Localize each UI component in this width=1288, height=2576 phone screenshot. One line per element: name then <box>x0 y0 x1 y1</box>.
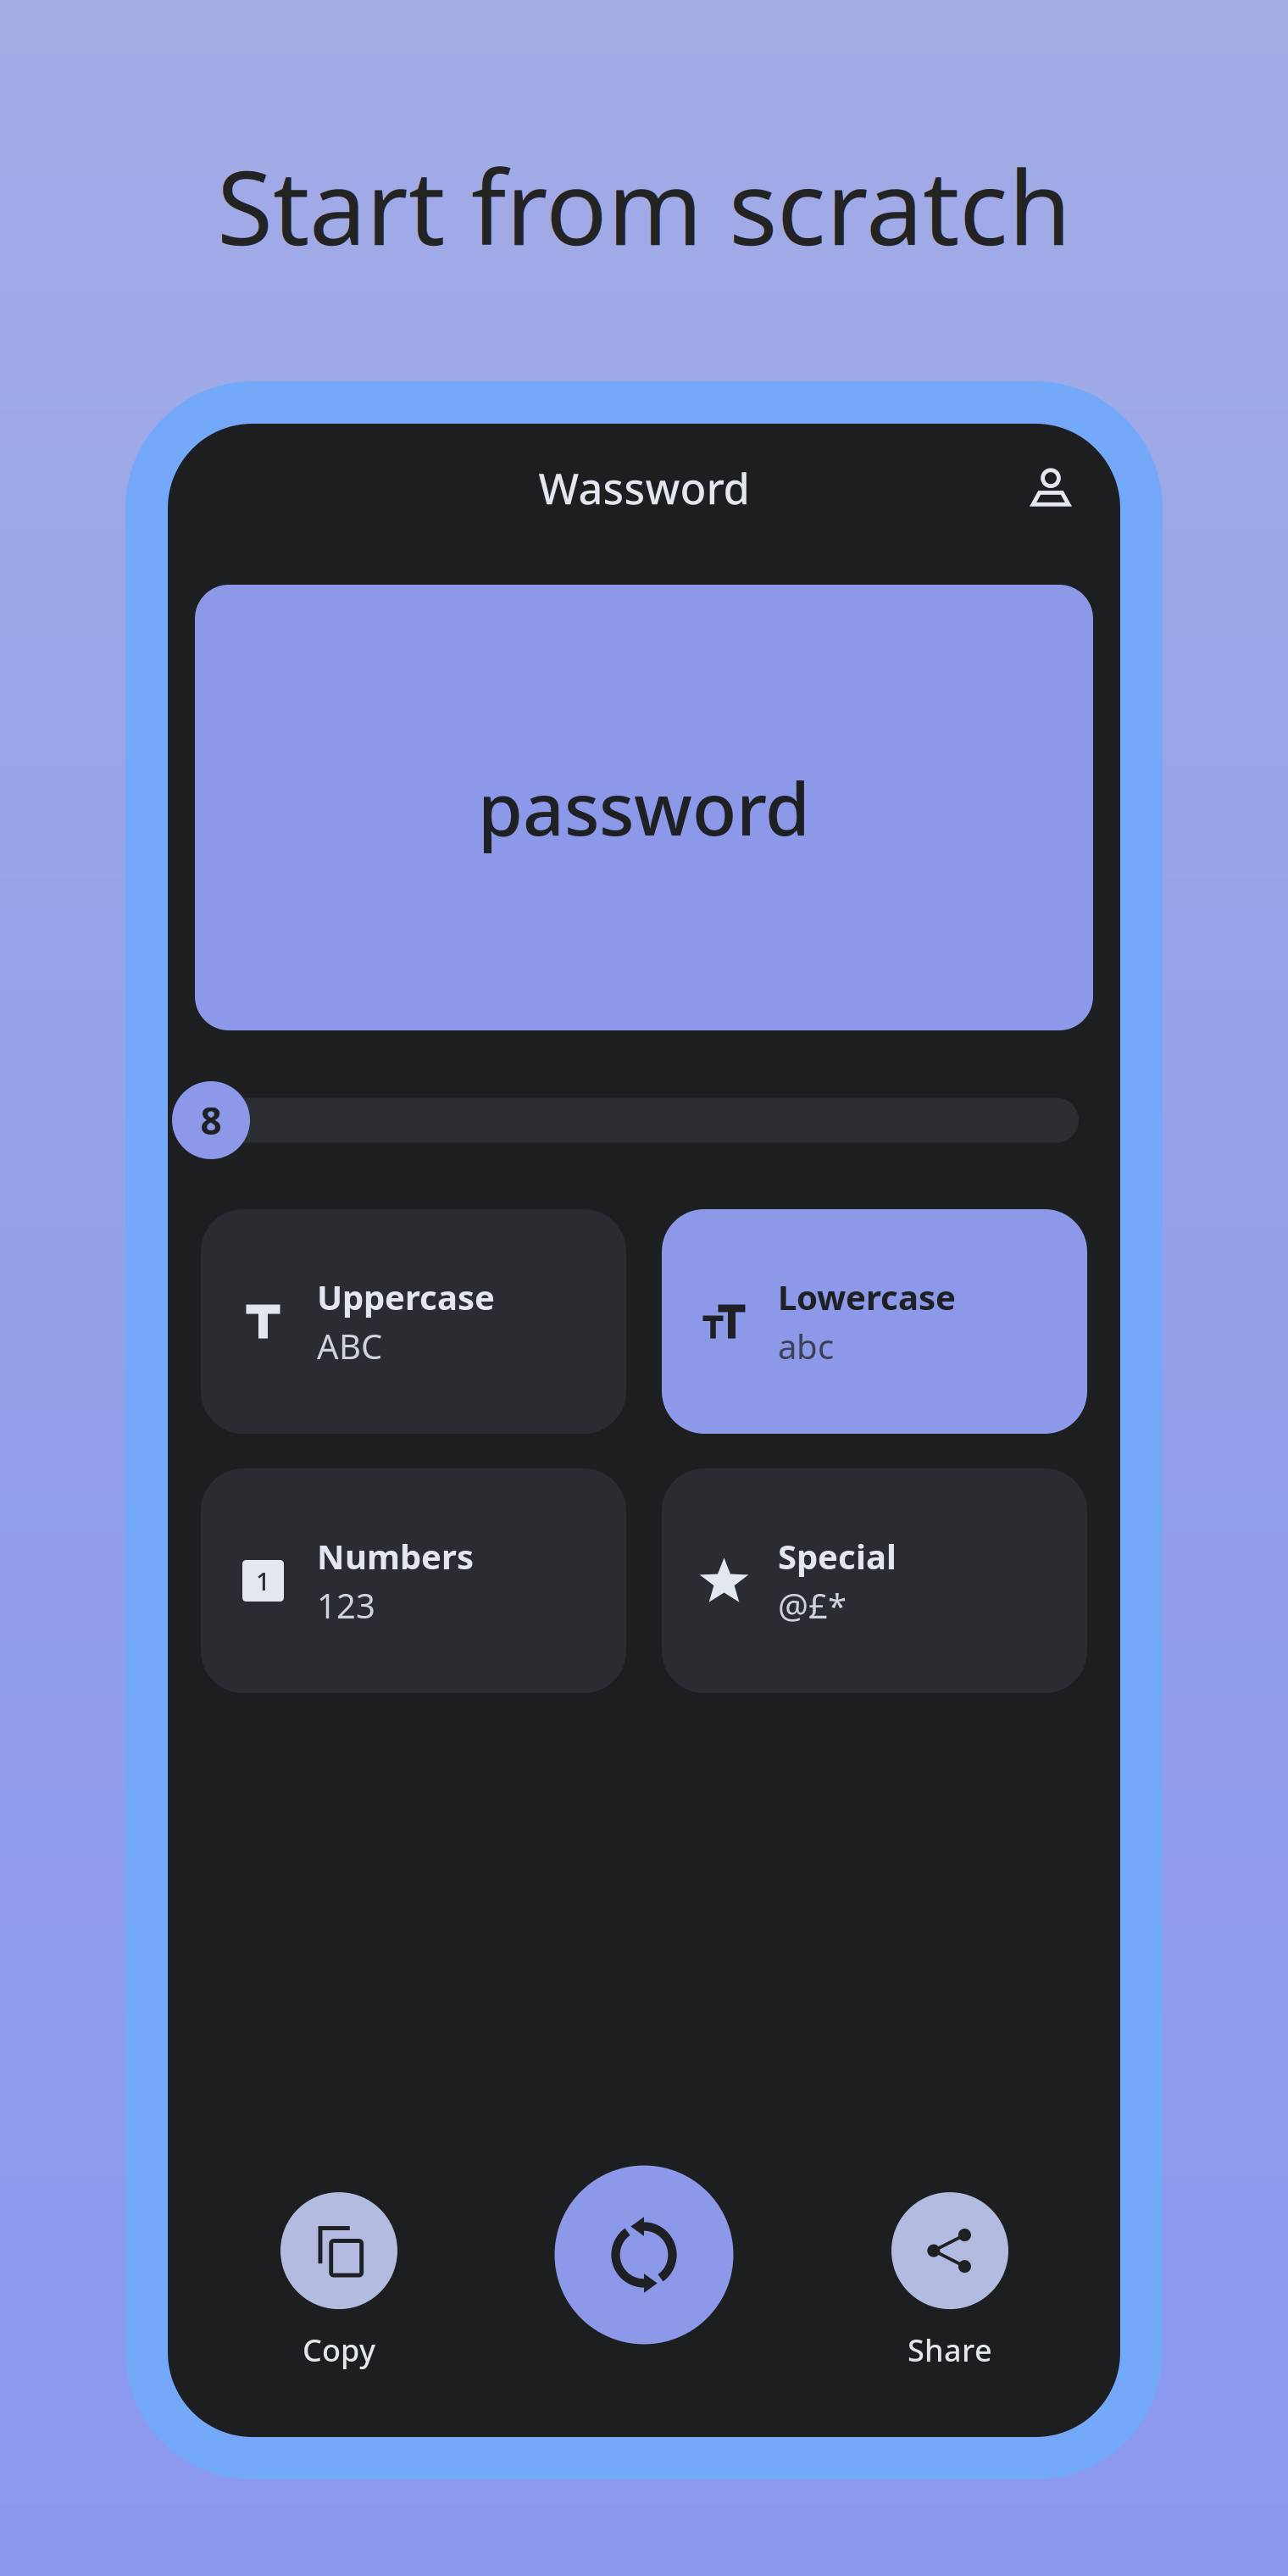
staticText: @£* <box>778 1583 847 1628</box>
staticText: Copy <box>303 2330 375 2370</box>
button[interactable]: 1 <box>201 1468 626 1693</box>
button[interactable]: Uppercase <box>201 1209 626 1434</box>
staticText: Lowercase <box>778 1274 956 1319</box>
staticText: 123 <box>317 1583 375 1628</box>
staticText: Wassword <box>539 459 749 516</box>
staticText: Special <box>778 1534 897 1579</box>
button[interactable]: Copy <box>212 2192 466 2370</box>
button[interactable]: Special <box>662 1468 1087 1693</box>
button[interactable]: Generate password <box>555 2165 733 2344</box>
staticText: ABC <box>317 1324 382 1369</box>
staticText: 8 <box>200 1095 222 1145</box>
staticText: abc <box>778 1324 834 1369</box>
staticText: Numbers <box>317 1534 474 1579</box>
staticText: Share <box>908 2330 992 2370</box>
button[interactable]: password <box>195 585 1093 1030</box>
staticText: Uppercase <box>317 1274 495 1319</box>
staticText: Start from scratch <box>217 138 1071 273</box>
button[interactable]: Share <box>823 2192 1077 2370</box>
button[interactable]: Lowercase <box>662 1209 1087 1434</box>
staticText: 1 <box>256 1564 270 1597</box>
staticText: password <box>478 759 810 856</box>
button[interactable]: Account <box>1004 441 1120 567</box>
